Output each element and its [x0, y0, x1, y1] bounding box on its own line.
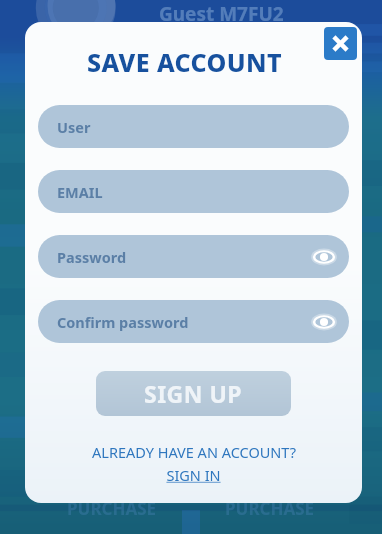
button[interactable]: User [38, 105, 349, 148]
staticText: SIGN UP [144, 378, 243, 409]
staticText: ALREADY HAVE AN ACCOUNT? [92, 442, 296, 462]
staticText: Confirm password [57, 312, 189, 332]
staticText: PURCHASE [225, 497, 315, 520]
staticText: EMAIL [57, 182, 103, 202]
staticText: User [57, 117, 91, 137]
button[interactable]: Confirm password [38, 300, 349, 343]
staticText: SIGN IN [166, 465, 221, 485]
button[interactable]: SIGN IN [166, 465, 221, 485]
button[interactable]: EMAIL [38, 170, 349, 213]
button[interactable]: Close [324, 27, 357, 60]
button[interactable]: Show password [310, 243, 338, 271]
staticText: Password [57, 247, 127, 267]
button[interactable]: SIGN UP [96, 371, 291, 416]
button[interactable]: ALREADY HAVE AN ACCOUNT? [92, 442, 296, 462]
staticText: PURCHASE [67, 497, 157, 520]
button[interactable]: Password [38, 235, 349, 278]
staticText: SAVE ACCOUNT [87, 45, 283, 79]
button[interactable]: Show password [310, 308, 338, 336]
staticText: Guest M7FU2 [159, 1, 284, 27]
